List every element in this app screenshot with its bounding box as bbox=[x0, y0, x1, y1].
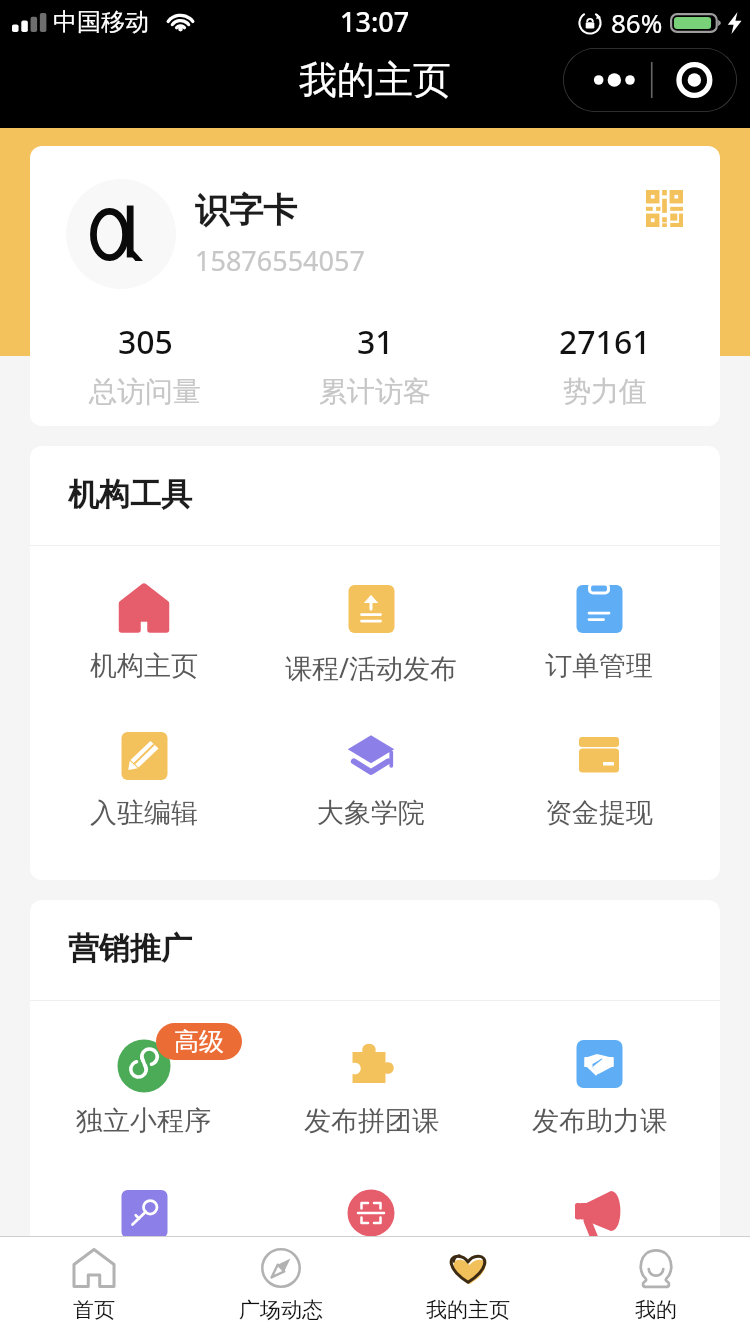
staticText: 广场动态 bbox=[239, 1297, 323, 1323]
staticText: 机构主页 bbox=[90, 649, 198, 683]
staticText: 独立小程序 bbox=[76, 1104, 211, 1138]
staticText: 15876554057 bbox=[195, 242, 365, 279]
button[interactable]: 大象学院 bbox=[257, 730, 485, 830]
button[interactable]: 订单管理 bbox=[485, 583, 713, 683]
button[interactable]: 识字卡 bbox=[30, 146, 720, 426]
staticText: 课程/活动发布 bbox=[285, 649, 458, 686]
staticText: 我的主页 bbox=[426, 1297, 510, 1323]
staticText: 累计访客 bbox=[319, 374, 431, 409]
button[interactable]: 27161 bbox=[490, 320, 720, 409]
staticText: 31 bbox=[357, 320, 394, 364]
staticText: 大象学院 bbox=[317, 796, 425, 830]
staticText: 分销推广 bbox=[90, 1254, 198, 1288]
staticText: 13:07 bbox=[340, 3, 410, 40]
staticText: 入驻编辑 bbox=[90, 796, 198, 830]
staticText: 发布助力课 bbox=[532, 1104, 667, 1138]
button[interactable]: 独立小程序 bbox=[30, 1038, 257, 1138]
staticText: 我的主页 bbox=[299, 56, 451, 104]
button[interactable]: 首页 bbox=[0, 1237, 187, 1334]
staticText: 305 bbox=[118, 320, 173, 364]
staticText: 机构工具 bbox=[68, 475, 192, 514]
staticText: 86% bbox=[611, 5, 663, 40]
button[interactable]: 核销管理 bbox=[257, 1188, 485, 1288]
staticText: 营销推广 bbox=[68, 929, 192, 968]
staticText: 27161 bbox=[559, 320, 651, 364]
button[interactable]: 我的主页 bbox=[374, 1237, 562, 1334]
staticText: 订单管理 bbox=[545, 649, 653, 683]
button[interactable]: 入驻编辑 bbox=[30, 730, 257, 830]
staticText: 我的 bbox=[635, 1297, 677, 1323]
button[interactable]: 营销活动 bbox=[485, 1188, 713, 1288]
staticText: 势力值 bbox=[563, 374, 647, 409]
button[interactable]: 资金提现 bbox=[485, 730, 713, 830]
button[interactable]: 305 bbox=[30, 320, 260, 409]
button[interactable]: 机构主页 bbox=[30, 583, 257, 683]
staticText: 首页 bbox=[73, 1297, 115, 1323]
button[interactable]: Mini program menu bbox=[563, 48, 737, 112]
button[interactable]: 课程/活动发布 bbox=[257, 583, 485, 686]
staticText: 营销活动 bbox=[545, 1254, 653, 1288]
staticText: 识字卡 bbox=[195, 189, 297, 232]
button[interactable]: 发布助力课 bbox=[485, 1038, 713, 1138]
staticText: 中国移动 bbox=[53, 7, 149, 37]
staticText: 资金提现 bbox=[545, 796, 653, 830]
button[interactable]: 31 bbox=[260, 320, 490, 409]
button[interactable]: 广场动态 bbox=[187, 1237, 374, 1334]
button[interactable]: 我的 bbox=[562, 1237, 750, 1334]
staticText: 总访问量 bbox=[89, 374, 201, 409]
button[interactable]: QR code bbox=[636, 180, 692, 236]
button[interactable]: 分销推广 bbox=[30, 1188, 257, 1288]
staticText: 高级 bbox=[174, 1026, 224, 1057]
staticText: 发布拼团课 bbox=[304, 1104, 439, 1138]
button[interactable]: 发布拼团课 bbox=[257, 1038, 485, 1138]
